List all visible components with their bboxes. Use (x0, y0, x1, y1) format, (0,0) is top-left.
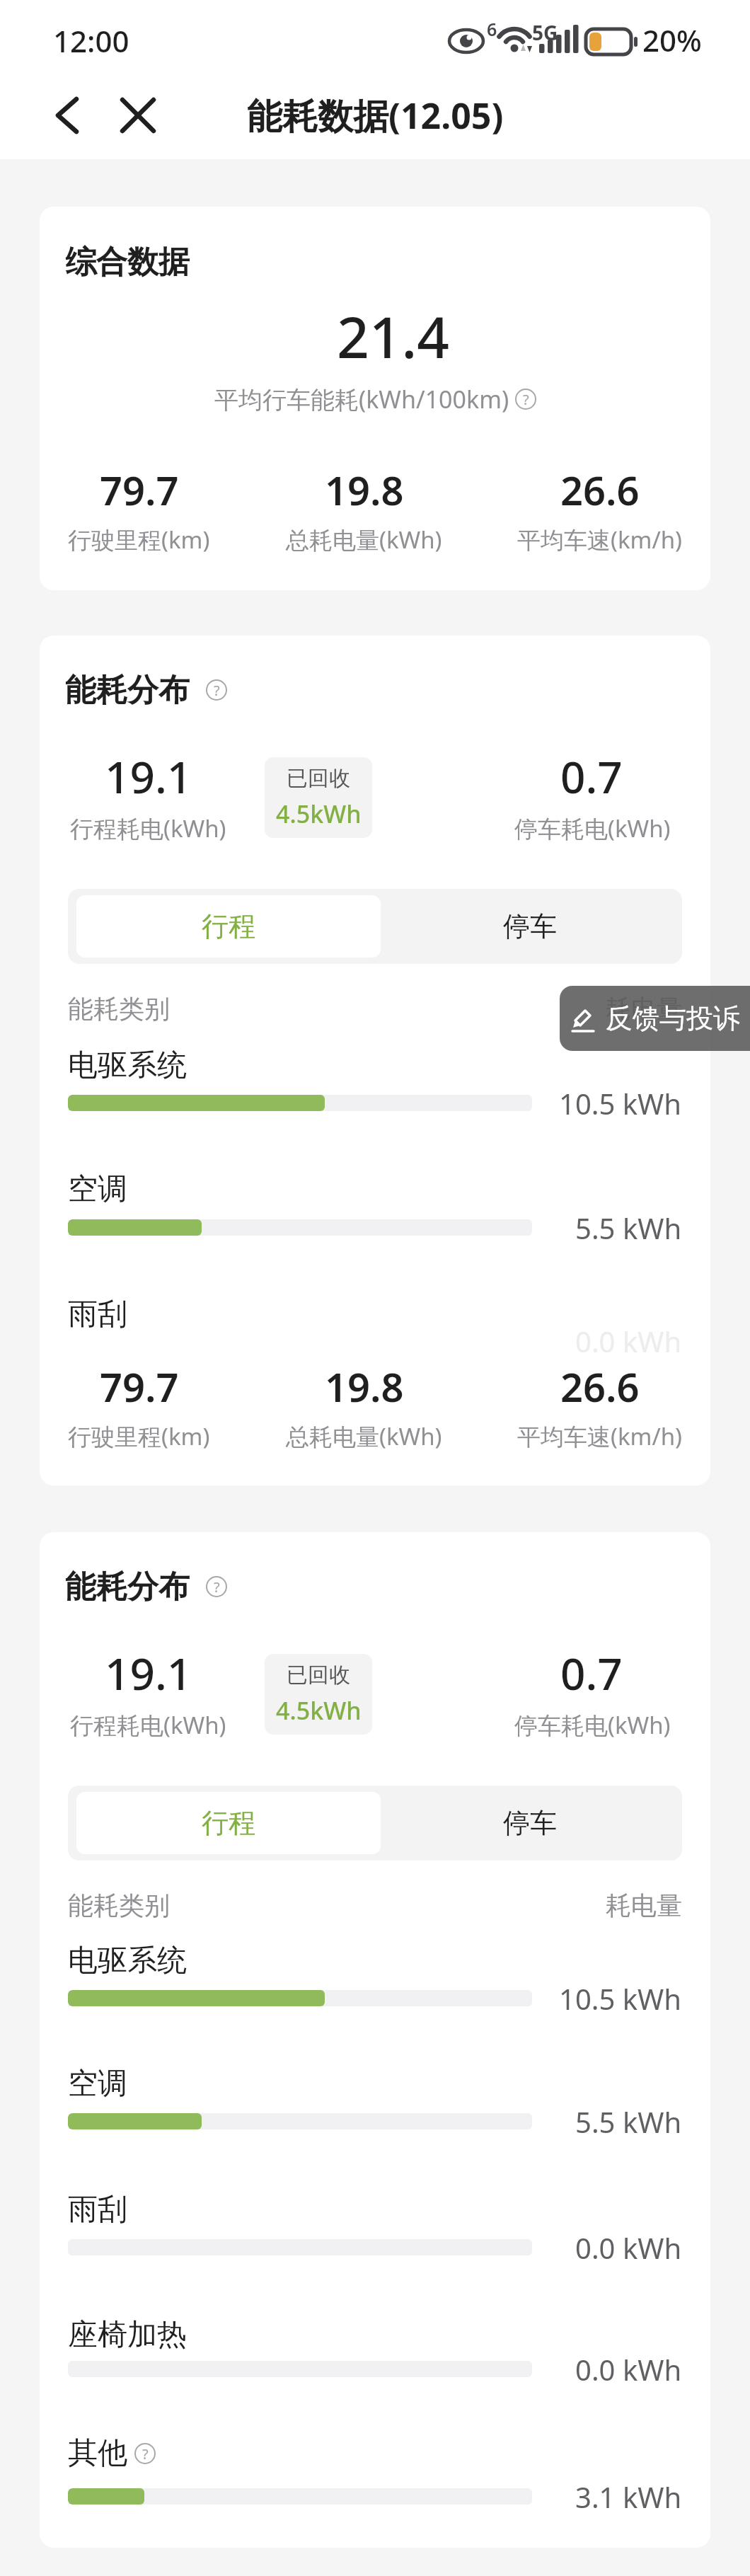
staticText: 停车 (503, 1806, 557, 1840)
staticText: 其他 (68, 2434, 127, 2472)
staticText: 行程耗电(kWh) (70, 812, 226, 844)
staticText: 能耗分布 (65, 671, 190, 710)
staticText: 雨刮 (68, 2191, 127, 2229)
staticText: 5.5 kWh (575, 1209, 682, 1247)
staticText: 19.1 (105, 1643, 192, 1703)
staticText: 能耗分布 (65, 1568, 190, 1606)
staticText: 4.5kWh (276, 1694, 362, 1727)
staticText: 0.0 kWh (575, 1322, 682, 1360)
staticText: 能耗类别 (68, 993, 170, 1025)
staticText: 平均车速(km/h) (517, 1420, 682, 1452)
staticText: 停车耗电(kWh) (514, 812, 671, 844)
staticText: 已回收 (287, 1662, 350, 1689)
button[interactable] (113, 91, 163, 140)
staticText: ? (214, 1577, 220, 1597)
staticText: 总耗电量(kWh) (286, 524, 442, 556)
button[interactable] (42, 91, 92, 140)
staticText: 空调 (68, 1171, 127, 1208)
staticText: ? (214, 681, 220, 700)
staticText: 19.8 (325, 463, 404, 517)
staticText: 已回收 (287, 765, 350, 792)
staticText: 电驱系统 (68, 1942, 187, 1979)
staticText: 26.6 (560, 463, 640, 517)
staticText: 26.6 (560, 1359, 640, 1413)
staticText: 19.1 (105, 747, 192, 806)
button[interactable]: 行程 (76, 895, 381, 958)
staticText: 0.0 kWh (575, 2229, 682, 2267)
staticText: 10.5 kWh (559, 1084, 682, 1122)
staticText: 平均车速(km/h) (517, 524, 682, 556)
staticText: 20% (642, 20, 702, 60)
staticText: ? (523, 390, 529, 409)
staticText: 行驶里程(km) (68, 524, 210, 556)
staticText: 反馈与投诉 (606, 1001, 740, 1035)
staticText: 4.5kWh (276, 798, 362, 830)
staticText: 3.1 kWh (575, 2478, 682, 2516)
staticText: 0.0 kWh (575, 2350, 682, 2388)
staticText: 5.5 kWh (575, 2103, 682, 2141)
button[interactable]: 停车 (378, 1786, 682, 1861)
staticText: 79.7 (100, 463, 179, 517)
button[interactable]: 停车 (378, 889, 682, 964)
staticText: 行驶里程(km) (68, 1420, 210, 1452)
staticText: 座椅加热 (68, 2316, 187, 2354)
button[interactable]: 行程 (76, 1792, 381, 1854)
staticText: 综合数据 (65, 243, 190, 282)
staticText: 雨刮 (68, 1296, 127, 1333)
staticText: 10.5 kWh (559, 1979, 682, 2018)
staticText: 0.7 (560, 747, 623, 806)
staticText: 19.8 (325, 1359, 404, 1413)
staticText: 电驱系统 (68, 1047, 187, 1084)
staticText: 耗电量 (606, 993, 682, 1025)
staticText: 5G (532, 19, 558, 46)
staticText: 79.7 (100, 1359, 179, 1413)
staticText: 停车 (503, 909, 557, 943)
staticText: 平均行车能耗(kWh/100km) (214, 383, 509, 415)
staticText: 21.4 (337, 297, 450, 368)
staticText: 停车耗电(kWh) (514, 1709, 671, 1741)
button[interactable]: 反馈与投诉 (560, 986, 750, 1051)
staticText: 6 (487, 17, 497, 41)
staticText: 行程 (202, 909, 255, 943)
staticText: 行程 (202, 1806, 255, 1840)
staticText: 耗电量 (606, 1890, 682, 1921)
staticText: 能耗类别 (68, 1890, 170, 1921)
staticText: 0.7 (560, 1643, 623, 1703)
staticText: 行程耗电(kWh) (70, 1709, 226, 1741)
staticText: 空调 (68, 2065, 127, 2103)
staticText: 12:00 (53, 21, 129, 61)
staticText: 总耗电量(kWh) (286, 1420, 442, 1452)
staticText: 能耗数据(12.05) (247, 91, 504, 139)
staticText: ? (142, 2444, 149, 2463)
